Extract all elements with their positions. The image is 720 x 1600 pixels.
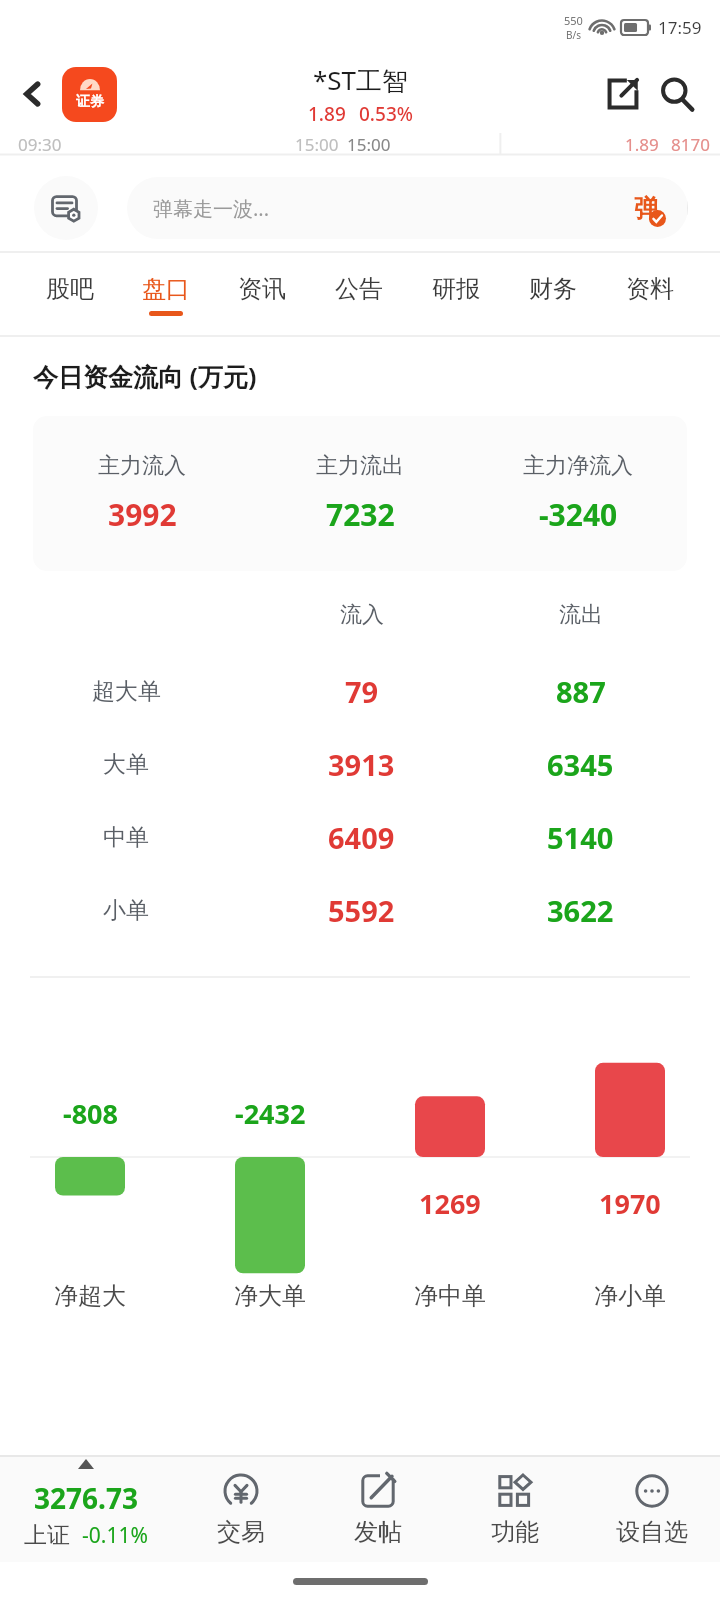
staticText: -808 (63, 1095, 118, 1132)
staticText: 5140 (547, 818, 614, 857)
staticText: 79 (345, 672, 379, 711)
button[interactable]: 财务 (504, 253, 601, 337)
button[interactable]: 小单 (0, 874, 720, 947)
staticText: 流出 (559, 601, 603, 629)
staticText: 3622 (547, 891, 614, 930)
staticText: -0.11% (82, 1521, 148, 1550)
button[interactable]: 弹幕走一波... (127, 177, 688, 239)
staticText: 3913 (328, 745, 395, 784)
staticText: 1.89 (308, 101, 346, 127)
staticText: -2432 (235, 1095, 306, 1132)
button[interactable]: 发帖 (309, 1456, 446, 1562)
staticText: 3992 (108, 494, 177, 535)
staticText: 1.89 (625, 133, 659, 156)
staticText: B/s (566, 28, 582, 42)
staticText: 887 (556, 672, 606, 711)
staticText: 资料 (626, 274, 674, 304)
staticText: 6345 (547, 745, 614, 784)
staticText: 5592 (328, 891, 395, 930)
staticText: 3276.73 (34, 1479, 138, 1517)
staticText: 财务 (529, 274, 577, 304)
button[interactable]: 3276.73 (0, 1456, 172, 1562)
button[interactable]: Notes (34, 176, 98, 240)
button[interactable]: Broker (62, 67, 117, 122)
staticText: 主力流入 (98, 452, 186, 480)
staticText: 主力流出 (316, 452, 404, 480)
staticText: 09:30 (18, 133, 62, 156)
staticText: 主力净流入 (523, 452, 633, 480)
staticText: 净大单 (234, 1281, 306, 1311)
staticText: 流入 (340, 601, 384, 629)
button[interactable]: 中单 (0, 801, 720, 874)
button[interactable]: 公告 (310, 253, 407, 337)
staticText: 上证 (24, 1521, 70, 1550)
staticText: -3240 (539, 494, 618, 535)
staticText: 资讯 (238, 274, 286, 304)
staticText: 7232 (326, 494, 395, 535)
staticText: 大单 (103, 750, 149, 779)
button[interactable]: 资讯 (214, 253, 310, 337)
staticText: 0.53% (359, 101, 413, 127)
button[interactable]: Back (10, 71, 56, 117)
staticText: 净小单 (594, 1281, 666, 1311)
button[interactable]: 设自选 (583, 1456, 720, 1562)
staticText: 盘口 (142, 274, 190, 304)
staticText: 发帖 (354, 1517, 402, 1547)
staticText: 公告 (335, 274, 383, 304)
staticText: 弹 (634, 193, 659, 224)
staticText: *ST工智 (313, 62, 409, 98)
staticText: 研报 (432, 274, 480, 304)
staticText: 15:00 (295, 133, 339, 156)
staticText: 8170 (671, 133, 710, 156)
staticText: 股吧 (46, 274, 94, 304)
button[interactable]: 股吧 (22, 253, 118, 337)
staticText: 功能 (491, 1517, 539, 1547)
button[interactable]: 主力流入 (33, 416, 687, 571)
staticText: 6409 (328, 818, 395, 857)
button[interactable]: 功能 (446, 1456, 583, 1562)
button[interactable]: 交易 (172, 1456, 309, 1562)
button[interactable]: 超大单 (0, 655, 720, 728)
staticText: 中单 (103, 823, 149, 852)
staticText: 15:00 (347, 133, 391, 156)
staticText: 净超大 (54, 1281, 126, 1311)
staticText: 550 (564, 13, 583, 28)
staticText: 弹幕走一波... (153, 195, 270, 222)
button[interactable]: Share (596, 67, 650, 121)
staticText: 今日资金流向 (万元) (33, 359, 257, 393)
button[interactable]: 资料 (601, 253, 698, 337)
staticText: 1269 (419, 1185, 481, 1222)
button[interactable]: Send danmaku (605, 177, 688, 239)
staticText: 1970 (599, 1185, 661, 1222)
button[interactable]: 大单 (0, 728, 720, 801)
staticText: 证券 (76, 93, 104, 111)
button[interactable]: 盘口 (118, 253, 214, 337)
button[interactable]: Search (650, 67, 704, 121)
staticText: 交易 (217, 1517, 265, 1547)
staticText: 17:59 (658, 16, 702, 39)
staticText: 超大单 (92, 677, 161, 706)
button[interactable]: 研报 (407, 253, 504, 337)
staticText: 小单 (103, 896, 149, 925)
staticText: 净中单 (414, 1281, 486, 1311)
staticText: 设自选 (616, 1517, 688, 1547)
